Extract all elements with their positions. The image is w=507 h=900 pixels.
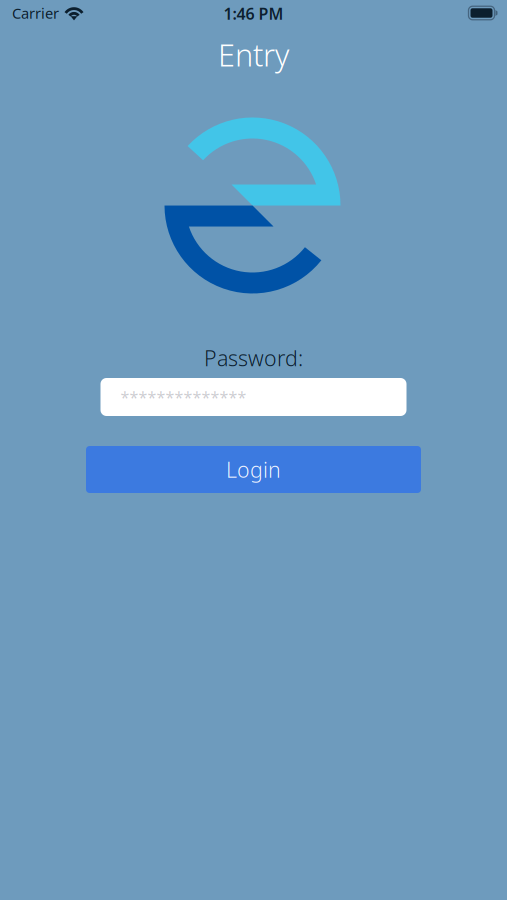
button[interactable]: Password bbox=[100, 378, 406, 416]
staticText: Login bbox=[226, 455, 281, 484]
staticText: 1:46 PM bbox=[223, 3, 283, 24]
staticText: Entry bbox=[218, 34, 289, 75]
staticText: Carrier bbox=[12, 3, 59, 23]
button[interactable]: Login bbox=[86, 446, 421, 493]
staticText: ************** bbox=[120, 386, 246, 408]
staticText: Password: bbox=[204, 344, 303, 372]
